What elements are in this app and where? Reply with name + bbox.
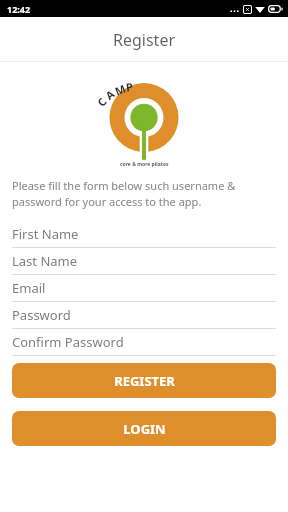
staticText: Password xyxy=(12,306,71,324)
staticText: Please fill the form below such username… xyxy=(12,178,276,209)
button[interactable]: LOGIN xyxy=(12,411,276,446)
staticText: 12:42 xyxy=(7,3,31,15)
button[interactable]: Confirm Password xyxy=(0,329,288,356)
button[interactable]: Password xyxy=(0,302,288,329)
staticText: REGISTER xyxy=(114,372,175,390)
staticText: Confirm Password xyxy=(12,333,124,351)
button[interactable]: First Name xyxy=(0,221,288,248)
staticText: Register xyxy=(113,29,176,51)
staticText: core & more pilates xyxy=(120,161,169,168)
staticText: Last Name xyxy=(12,252,78,270)
staticText: A xyxy=(102,86,118,103)
staticText: M xyxy=(113,80,128,98)
staticText: P xyxy=(125,79,134,94)
button[interactable]: Email xyxy=(0,275,288,302)
staticText: Email xyxy=(12,279,46,297)
button[interactable]: Last Name xyxy=(0,248,288,275)
staticText: C xyxy=(94,94,110,109)
staticText: First Name xyxy=(12,225,79,243)
staticText: LOGIN xyxy=(123,420,166,438)
button[interactable]: REGISTER xyxy=(12,363,276,398)
other: Camp core & more pilates logo xyxy=(84,77,204,169)
